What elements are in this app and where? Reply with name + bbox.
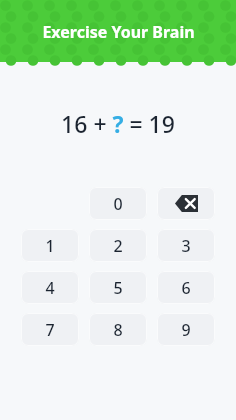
staticText: 2 <box>113 235 123 257</box>
button[interactable]: 7 <box>21 313 79 346</box>
staticText: 7 <box>45 319 55 341</box>
staticText: 4 <box>45 277 55 299</box>
button[interactable]: 5 <box>89 271 147 304</box>
staticText: 8 <box>113 319 123 341</box>
button[interactable]: 6 <box>157 271 215 304</box>
staticText: 3 <box>181 235 191 257</box>
button[interactable]: 1 <box>21 229 79 262</box>
button[interactable]: Backspace <box>157 187 215 220</box>
button[interactable]: 8 <box>89 313 147 346</box>
staticText: 16 + ? = 19 <box>61 108 175 139</box>
staticText: 6 <box>181 277 191 299</box>
staticText: Exercise Your Brain <box>42 21 195 43</box>
button[interactable]: 9 <box>157 313 215 346</box>
button[interactable]: 4 <box>21 271 79 304</box>
staticText: 0 <box>113 193 123 215</box>
staticText: 5 <box>113 277 123 299</box>
staticText: 9 <box>181 319 191 341</box>
button[interactable]: 0 <box>89 187 147 220</box>
staticText: 1 <box>45 235 55 257</box>
button[interactable]: 2 <box>89 229 147 262</box>
button[interactable]: 3 <box>157 229 215 262</box>
